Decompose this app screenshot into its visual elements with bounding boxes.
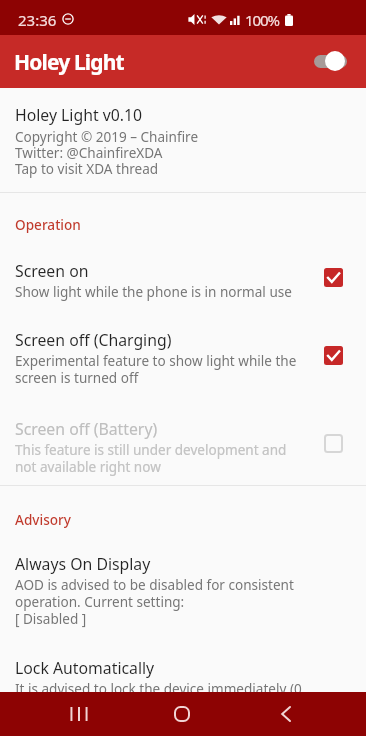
staticText: Show light while the phone is in normal … [15, 283, 292, 301]
staticText: Advisory [15, 510, 72, 529]
staticText: Screen off (Battery) [15, 418, 158, 440]
staticText: Operation [15, 215, 81, 234]
staticText: Screen on [15, 260, 89, 282]
staticText: AOD is advised to be disabled for consis… [15, 576, 294, 628]
button[interactable]: Screen on [0, 257, 366, 321]
staticText: Copyright © 2019 – Chainfire Twitter: @C… [15, 128, 199, 178]
staticText: Holey Light v0.10 [15, 104, 143, 126]
button[interactable]: Lock Automatically [0, 654, 366, 698]
staticText: 100% [245, 10, 279, 30]
staticText: Holey Light [14, 48, 124, 77]
button[interactable]: Always On Display [0, 550, 366, 648]
button[interactable]: Home [160, 692, 204, 736]
button[interactable]: Enable Holey Light [304, 40, 356, 83]
staticText: Lock Automatically [15, 657, 155, 679]
staticText: This feature is still under development … [15, 441, 287, 476]
staticText: Screen off (Charging) [15, 329, 172, 351]
staticText: It is advised to lock the device immedia… [15, 680, 302, 698]
staticText: Experimental feature to show light while… [15, 352, 297, 387]
button[interactable]: Holey Light v0.10 [0, 98, 366, 188]
button[interactable]: Screen off (Battery) [0, 415, 366, 487]
staticText: Always On Display [15, 553, 151, 575]
button[interactable]: Screen off (Charging) [0, 326, 366, 408]
button[interactable]: Back [263, 692, 307, 736]
button[interactable]: Recent apps [57, 692, 101, 736]
staticText: 23:36 [18, 10, 57, 30]
